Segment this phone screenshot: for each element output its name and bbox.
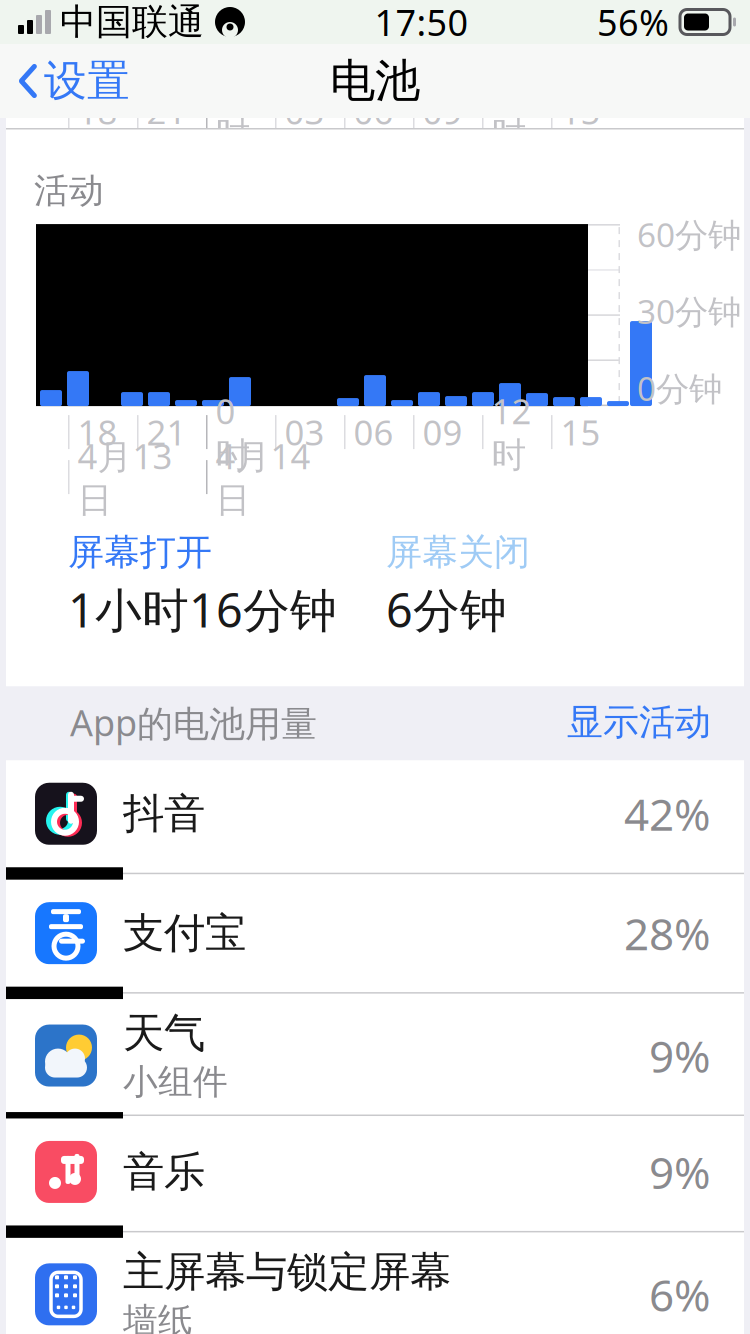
staticText: 18 xyxy=(77,409,117,455)
staticText: 17:50 xyxy=(374,0,468,46)
staticText: 12时 xyxy=(491,388,531,476)
staticText: 28% xyxy=(624,904,711,962)
staticText: 03 xyxy=(284,88,324,134)
staticText: 09 xyxy=(422,88,462,134)
staticText: 设置 xyxy=(44,55,130,107)
staticText: 4月14日 xyxy=(215,433,310,521)
staticText: 42% xyxy=(624,784,711,843)
staticText: 1小时16分钟 xyxy=(68,578,337,640)
staticText: 主屏幕与锁定屏幕 xyxy=(123,1247,451,1297)
staticText: 15 xyxy=(560,409,600,455)
staticText: 15 xyxy=(560,88,600,134)
staticText: 6% xyxy=(649,1265,711,1323)
staticText: 30分钟 xyxy=(637,289,741,333)
staticText: 显示活动 xyxy=(567,700,711,744)
staticText: 03 xyxy=(284,409,324,455)
staticText: 墙纸 xyxy=(123,1299,193,1334)
staticText: 屏幕关闭 xyxy=(386,530,530,574)
staticText: 4月13日 xyxy=(77,433,172,521)
staticText: 活动 xyxy=(34,169,104,212)
staticText: 9% xyxy=(649,1143,711,1201)
button[interactable]: 音乐 xyxy=(6,1118,744,1238)
staticText: 56% xyxy=(597,0,669,46)
staticText: 音乐 xyxy=(123,1147,205,1197)
staticText: 60分钟 xyxy=(637,212,741,256)
staticText: 0时 xyxy=(215,67,250,155)
button[interactable]: 主屏幕与锁定屏幕 xyxy=(6,1238,744,1334)
staticText: 0分钟 xyxy=(637,366,722,410)
staticText: 小组件 xyxy=(123,1061,228,1103)
staticText: 6分钟 xyxy=(386,578,507,640)
staticText: 18 xyxy=(77,88,117,134)
staticText: 9% xyxy=(649,1026,711,1085)
button[interactable]: 支付宝 xyxy=(6,880,744,999)
staticText: 中国联通 xyxy=(60,0,204,44)
staticText: 09 xyxy=(422,409,462,455)
staticText: 支付宝 xyxy=(123,908,246,959)
button[interactable]: 天气 xyxy=(6,999,744,1118)
staticText: 06 xyxy=(353,409,393,455)
button[interactable]: 抖音 xyxy=(6,760,744,880)
staticText: 抖音 xyxy=(123,788,205,839)
staticText: 21 xyxy=(146,88,186,134)
staticText: 屏幕打开 xyxy=(68,530,212,574)
staticText: 21 xyxy=(146,409,186,455)
button[interactable]: 显示活动 xyxy=(567,700,711,744)
staticText: 0时 xyxy=(215,388,250,476)
staticText: 天气 xyxy=(123,1008,205,1059)
button[interactable]: 设置 xyxy=(0,50,144,112)
staticText: 12时 xyxy=(491,67,531,155)
staticText: 06 xyxy=(353,88,393,134)
staticText: App的电池用量 xyxy=(70,698,317,746)
staticText: 电池 xyxy=(330,53,420,109)
